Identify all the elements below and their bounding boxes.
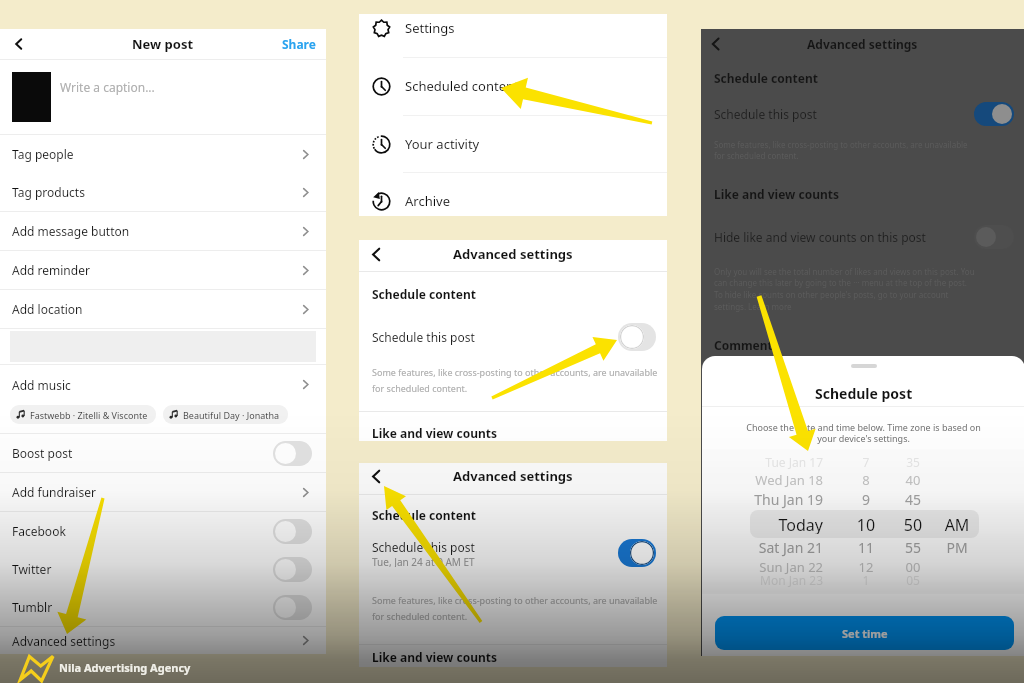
button[interactable]: Tag people <box>0 135 326 173</box>
staticText: Tue Jan 17 <box>715 454 823 470</box>
button[interactable]: Schedule this post <box>359 323 667 351</box>
staticText: 40 <box>896 471 930 489</box>
staticText: Schedule content <box>714 70 818 86</box>
staticText: 45 <box>896 490 930 509</box>
button[interactable]: Toggle <box>273 595 312 620</box>
staticText: Beautiful Day · Jonatha <box>183 409 280 421</box>
button[interactable]: Fastwebb · Zitelli & Visconte <box>10 405 156 424</box>
button[interactable]: Your activity <box>359 116 667 172</box>
staticText: Some features, like cross-posting to oth… <box>714 139 968 162</box>
staticText: Sat Jan 21 <box>715 538 823 557</box>
staticText: Add location <box>12 301 83 317</box>
staticText: Tumblr <box>12 599 53 615</box>
button[interactable]: Back <box>9 34 29 54</box>
button[interactable]: Schedule this post <box>701 101 1024 127</box>
staticText: Schedule this post <box>372 539 475 555</box>
staticText: Like and view counts <box>372 425 497 441</box>
staticText: Archive <box>405 192 450 210</box>
button[interactable]: Add music <box>0 365 326 404</box>
staticText: Write a caption... <box>60 79 155 95</box>
staticText: Add fundraiser <box>12 484 96 500</box>
staticText: Sun Jan 22 <box>715 558 823 576</box>
button[interactable]: Add fundraiser <box>0 473 326 511</box>
staticText: Some features, like cross-posting to oth… <box>372 594 658 622</box>
staticText: Advanced settings <box>453 245 573 263</box>
staticText: Thu Jan 19 <box>715 490 823 509</box>
staticText: 50 <box>896 514 930 534</box>
button[interactable]: Scheduled content <box>359 58 667 114</box>
staticText: Schedule content <box>372 507 476 523</box>
staticText: Like and view counts <box>372 649 497 665</box>
button[interactable]: Back <box>366 466 386 486</box>
staticText: Set time <box>842 626 888 641</box>
staticText: 55 <box>896 538 930 557</box>
staticText: Scheduled content <box>405 77 519 95</box>
staticText: PM <box>937 538 977 557</box>
button[interactable]: Toggle <box>618 539 656 567</box>
button[interactable]: Boost post <box>0 434 326 472</box>
staticText: Advanced settings <box>807 36 918 52</box>
staticText <box>937 558 977 576</box>
staticText: 8 <box>849 471 883 489</box>
staticText: Nila Advertising Agency <box>59 660 191 675</box>
button[interactable]: Schedule this post <box>359 539 667 567</box>
button[interactable]: Archive <box>359 173 667 229</box>
staticText: 35 <box>896 454 930 470</box>
button[interactable]: Add message button <box>0 212 326 250</box>
staticText: Add message button <box>12 223 130 239</box>
staticText: 1 <box>849 572 883 588</box>
staticText: Tag people <box>12 146 74 162</box>
staticText: AM <box>937 514 977 534</box>
staticText: Only you will see the total number of li… <box>714 266 975 313</box>
button[interactable]: Add reminder <box>0 251 326 289</box>
button[interactable]: Share <box>272 32 326 56</box>
staticText: Facebook <box>12 523 66 539</box>
button[interactable]: Toggle <box>273 519 312 544</box>
staticText: Schedule post <box>815 384 913 403</box>
staticText: 00 <box>896 558 930 576</box>
staticText: Hide like and view counts on this post <box>714 229 926 245</box>
staticText: Tue, Jan 24 at 9 AM ET <box>372 555 475 567</box>
button[interactable]: Toggle <box>974 102 1014 126</box>
staticText: Boost post <box>12 445 73 461</box>
button[interactable]: Toggle <box>974 225 1014 249</box>
button[interactable]: Hide like and view counts on this post <box>701 224 1024 250</box>
staticText: New post <box>132 35 194 53</box>
button[interactable]: Toggle <box>273 441 312 466</box>
button[interactable]: Add location <box>0 290 326 328</box>
staticText: Tag products <box>12 184 85 200</box>
staticText: 05 <box>896 572 930 588</box>
staticText: 9 <box>849 490 883 509</box>
button[interactable]: Toggle <box>618 323 656 351</box>
staticText: 7 <box>849 454 883 470</box>
button[interactable]: Back <box>366 244 386 264</box>
button[interactable]: Settings <box>359 0 667 56</box>
button[interactable]: Back <box>706 34 726 54</box>
button[interactable]: Set time <box>715 616 1014 650</box>
staticText: Schedule this post <box>714 106 817 122</box>
staticText: 12 <box>849 558 883 576</box>
staticText: Like and view counts <box>714 186 839 202</box>
staticText: Add reminder <box>12 262 90 278</box>
staticText: Schedule this post <box>372 329 475 345</box>
staticText <box>937 572 977 588</box>
staticText: Wed Jan 18 <box>715 471 823 489</box>
staticText: Twitter <box>12 561 52 577</box>
staticText: Schedule content <box>372 286 476 302</box>
button[interactable]: Advanced settings <box>0 627 326 654</box>
button[interactable]: Twitter <box>0 550 326 588</box>
staticText: Fastwebb · Zitelli & Visconte <box>30 409 148 421</box>
button[interactable]: Toggle <box>273 557 312 582</box>
staticText: Comment <box>714 337 773 353</box>
button[interactable]: Facebook <box>0 512 326 550</box>
button[interactable]: Tumblr <box>0 588 326 626</box>
staticText: Mon Jan 23 <box>715 572 823 588</box>
button[interactable]: Tag products <box>0 173 326 211</box>
staticText: Some features, like cross-posting to oth… <box>372 366 658 394</box>
staticText: 10 <box>849 514 883 534</box>
staticText: Advanced settings <box>453 467 573 485</box>
staticText: Your activity <box>405 135 480 153</box>
button[interactable]: Beautiful Day · Jonatha <box>163 405 288 424</box>
